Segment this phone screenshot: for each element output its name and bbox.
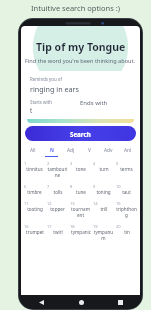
staticText: tambourine xyxy=(47,166,68,178)
button[interactable]: 5 xyxy=(115,161,138,172)
button[interactable]: 20 xyxy=(115,224,138,235)
staticText: 5 xyxy=(116,161,119,166)
button[interactable]: Adj xyxy=(61,147,80,157)
button[interactable]: 11 xyxy=(23,201,46,212)
staticText: Find the word you're been thinking about… xyxy=(25,57,136,65)
staticText: 9 xyxy=(93,184,96,189)
staticText: timbre xyxy=(27,189,42,195)
button[interactable]: 9 xyxy=(92,184,115,195)
button[interactable]: 7 xyxy=(46,184,69,195)
staticText: 4 xyxy=(93,161,96,166)
staticText: Ends with xyxy=(80,99,108,107)
button[interactable]: 6 xyxy=(23,184,46,195)
button[interactable]: 15 xyxy=(115,201,138,218)
staticText: Adv xyxy=(104,147,113,154)
staticText: N xyxy=(50,147,54,154)
staticText: triphthong xyxy=(116,206,137,218)
staticText: 19 xyxy=(93,224,98,229)
staticText: 8 xyxy=(70,184,73,189)
staticText: 6 xyxy=(24,184,27,189)
staticText: tolls xyxy=(53,189,63,195)
button[interactable]: N xyxy=(42,147,61,157)
staticText: 15 xyxy=(116,201,121,206)
button[interactable]: 19 xyxy=(92,224,115,241)
staticText: tooting xyxy=(27,206,43,212)
staticText: 16 xyxy=(24,224,29,229)
staticText: Search xyxy=(70,130,91,138)
staticText: tinnitus xyxy=(26,166,43,172)
staticText: All xyxy=(30,147,36,154)
staticText: ringing in ears xyxy=(30,84,79,94)
button[interactable]: Reminds you of xyxy=(24,71,137,119)
staticText: Tip of my Tongue xyxy=(36,40,126,54)
staticText: Anl xyxy=(124,147,132,154)
staticText: 11 xyxy=(24,201,29,206)
staticText: tympanic xyxy=(71,229,91,235)
button[interactable]: V xyxy=(80,147,99,157)
staticText: tone xyxy=(76,166,86,172)
button[interactable]: 12 xyxy=(46,201,69,212)
staticText: 2 xyxy=(47,161,50,166)
staticText: twirl xyxy=(53,229,63,235)
staticText: Reminds you of xyxy=(30,76,63,82)
button[interactable]: Adv xyxy=(99,147,118,157)
button[interactable]: Anl xyxy=(118,147,137,157)
button[interactable]: All xyxy=(24,147,42,157)
staticText: toning xyxy=(96,189,111,195)
button[interactable]: Search xyxy=(25,126,136,141)
staticText: 12 xyxy=(47,201,52,206)
button[interactable]: 16 xyxy=(23,224,46,235)
staticText: 3 xyxy=(70,161,73,166)
staticText: trill xyxy=(100,206,108,212)
button[interactable]: Home xyxy=(76,297,86,307)
button[interactable]: Recent apps xyxy=(115,297,125,307)
button[interactable]: Back xyxy=(36,297,46,307)
staticText: topper xyxy=(50,206,65,212)
staticText: trumpet xyxy=(26,229,44,235)
staticText: 20 xyxy=(116,224,121,229)
button[interactable]: 18 xyxy=(69,224,92,235)
staticText: 7 xyxy=(47,184,50,189)
staticText: taut xyxy=(122,189,131,195)
button[interactable]: 4 xyxy=(92,161,115,172)
staticText: terms xyxy=(120,166,133,172)
staticText: 13 xyxy=(70,201,75,206)
staticText: 18 xyxy=(70,224,75,229)
button[interactable]: 3 xyxy=(69,161,92,172)
button[interactable]: 17 xyxy=(46,224,69,235)
staticText: Intuitive search options :) xyxy=(31,3,121,13)
button[interactable]: 10 xyxy=(115,184,138,195)
button[interactable]: 2 xyxy=(46,161,69,178)
button[interactable]: 13 xyxy=(69,201,92,218)
staticText: 17 xyxy=(47,224,52,229)
staticText: tympanum xyxy=(93,229,114,241)
button[interactable]: 8 xyxy=(69,184,92,195)
staticText: 14 xyxy=(93,201,98,206)
staticText: tin xyxy=(124,229,130,235)
staticText: 1 xyxy=(24,161,27,166)
staticText: turn xyxy=(99,166,109,172)
button[interactable]: 1 xyxy=(23,161,46,172)
staticText: t xyxy=(30,106,33,114)
staticText: tune xyxy=(76,189,86,195)
staticText: V xyxy=(88,147,91,154)
staticText: Starts with xyxy=(30,99,52,105)
staticText: Adj xyxy=(67,147,75,154)
button[interactable]: 14 xyxy=(92,201,115,212)
staticText: tournament xyxy=(70,206,91,218)
staticText: 10 xyxy=(116,184,121,189)
